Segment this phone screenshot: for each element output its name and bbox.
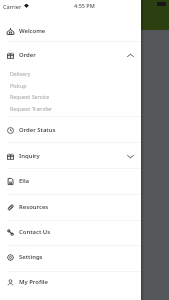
other: Settings (7, 254, 14, 261)
staticText: Carrier (3, 3, 22, 10)
button[interactable]: Delivery (0, 68, 141, 79)
button[interactable]: Ella (0, 169, 141, 193)
other: Order Status (7, 127, 14, 134)
button[interactable]: Order (0, 43, 141, 67)
staticText: My Profile (19, 278, 134, 286)
other: Welcome (7, 28, 14, 35)
button[interactable]: Request Transfer (0, 103, 141, 114)
staticText: Contact Us (19, 228, 134, 236)
staticText: Welcome (19, 27, 134, 35)
staticText: Settings (19, 253, 134, 261)
button[interactable]: Contact Us (0, 220, 141, 244)
button[interactable]: Request Service (0, 91, 141, 102)
staticText: Order Status (19, 126, 134, 134)
other: Ella (7, 178, 14, 185)
other: Resources (7, 204, 14, 211)
button[interactable]: Inquiry (0, 144, 141, 168)
staticText: Order (19, 51, 127, 59)
other: Order (7, 52, 14, 59)
staticText: Ella (19, 177, 134, 185)
staticText: Pickup (10, 82, 27, 89)
staticText: Request Service (10, 93, 50, 100)
staticText: Inquiry (19, 152, 127, 160)
staticText: Request Transfer (10, 105, 53, 112)
other: My Profile (7, 279, 14, 286)
button[interactable]: My Profile (0, 270, 141, 294)
staticText: 4:55 PM (74, 2, 95, 9)
button[interactable]: Settings (0, 245, 141, 269)
other: Inquiry (7, 153, 14, 160)
button[interactable]: Pickup (0, 80, 141, 91)
staticText: Delivery (10, 70, 31, 77)
other: Contact Us (7, 229, 14, 236)
button[interactable]: Order Status (0, 118, 141, 142)
button[interactable]: Welcome (0, 19, 141, 43)
button[interactable]: Resources (0, 195, 141, 219)
staticText: Resources (19, 203, 134, 211)
